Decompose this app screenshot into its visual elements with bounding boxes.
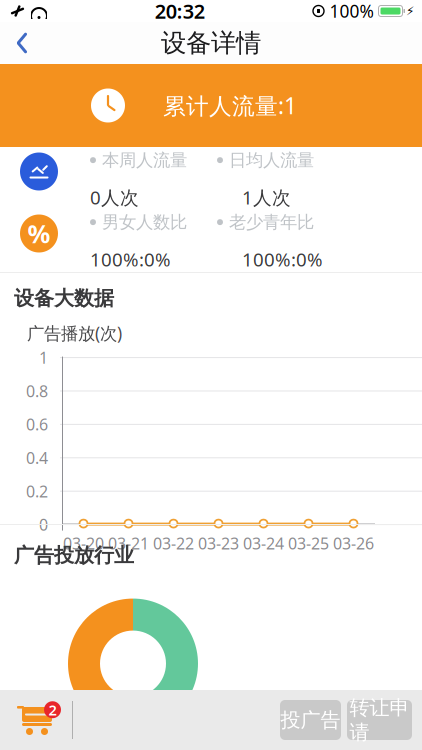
staticText: 设备详情 (161, 27, 261, 58)
staticText: 100%:0% (90, 247, 171, 272)
staticText: 2 (48, 700, 56, 719)
staticText: 03-21 (108, 533, 149, 554)
button[interactable]: 转让申请 (347, 700, 412, 740)
staticText: 日均人流量 (229, 149, 314, 171)
button[interactable]: 投广告 (280, 700, 341, 740)
staticText: 老少青年比 (229, 211, 314, 233)
staticText: 03-24 (243, 533, 284, 554)
staticText: 0.8 (26, 380, 48, 402)
staticText: 100%:0% (242, 247, 323, 272)
staticText: 03-23 (198, 533, 239, 554)
staticText: 转让申请 (349, 695, 409, 744)
staticText: 1 (39, 347, 48, 368)
staticText: 1人次 (242, 185, 291, 210)
staticText: 100% (329, 0, 373, 22)
staticText: 03-26 (333, 533, 374, 554)
staticText: 03-25 (288, 533, 329, 554)
staticText: 03-20 (63, 533, 104, 554)
staticText: 0 (39, 514, 48, 535)
staticText: 广告播放(次) (27, 322, 122, 345)
staticText: 03-22 (153, 533, 194, 554)
button[interactable]: 返回 (0, 22, 44, 64)
staticText: 0.6 (26, 414, 48, 435)
staticText: 累计人流量:1 (163, 90, 297, 120)
staticText: 本周人流量 (102, 149, 187, 171)
staticText: 0.2 (26, 481, 48, 502)
staticText: 设备大数据 (14, 286, 114, 311)
staticText: ⚡︎ (406, 4, 414, 18)
staticText: 男女人数比 (102, 211, 187, 233)
button[interactable]: 购物车 (0, 700, 62, 740)
staticText: 广告投放行业 (14, 543, 134, 568)
staticText: % (27, 217, 50, 250)
staticText: 0人次 (90, 185, 139, 210)
staticText: 0.4 (26, 447, 48, 468)
staticText: 20:32 (155, 0, 205, 24)
staticText: 投广告 (280, 708, 340, 732)
